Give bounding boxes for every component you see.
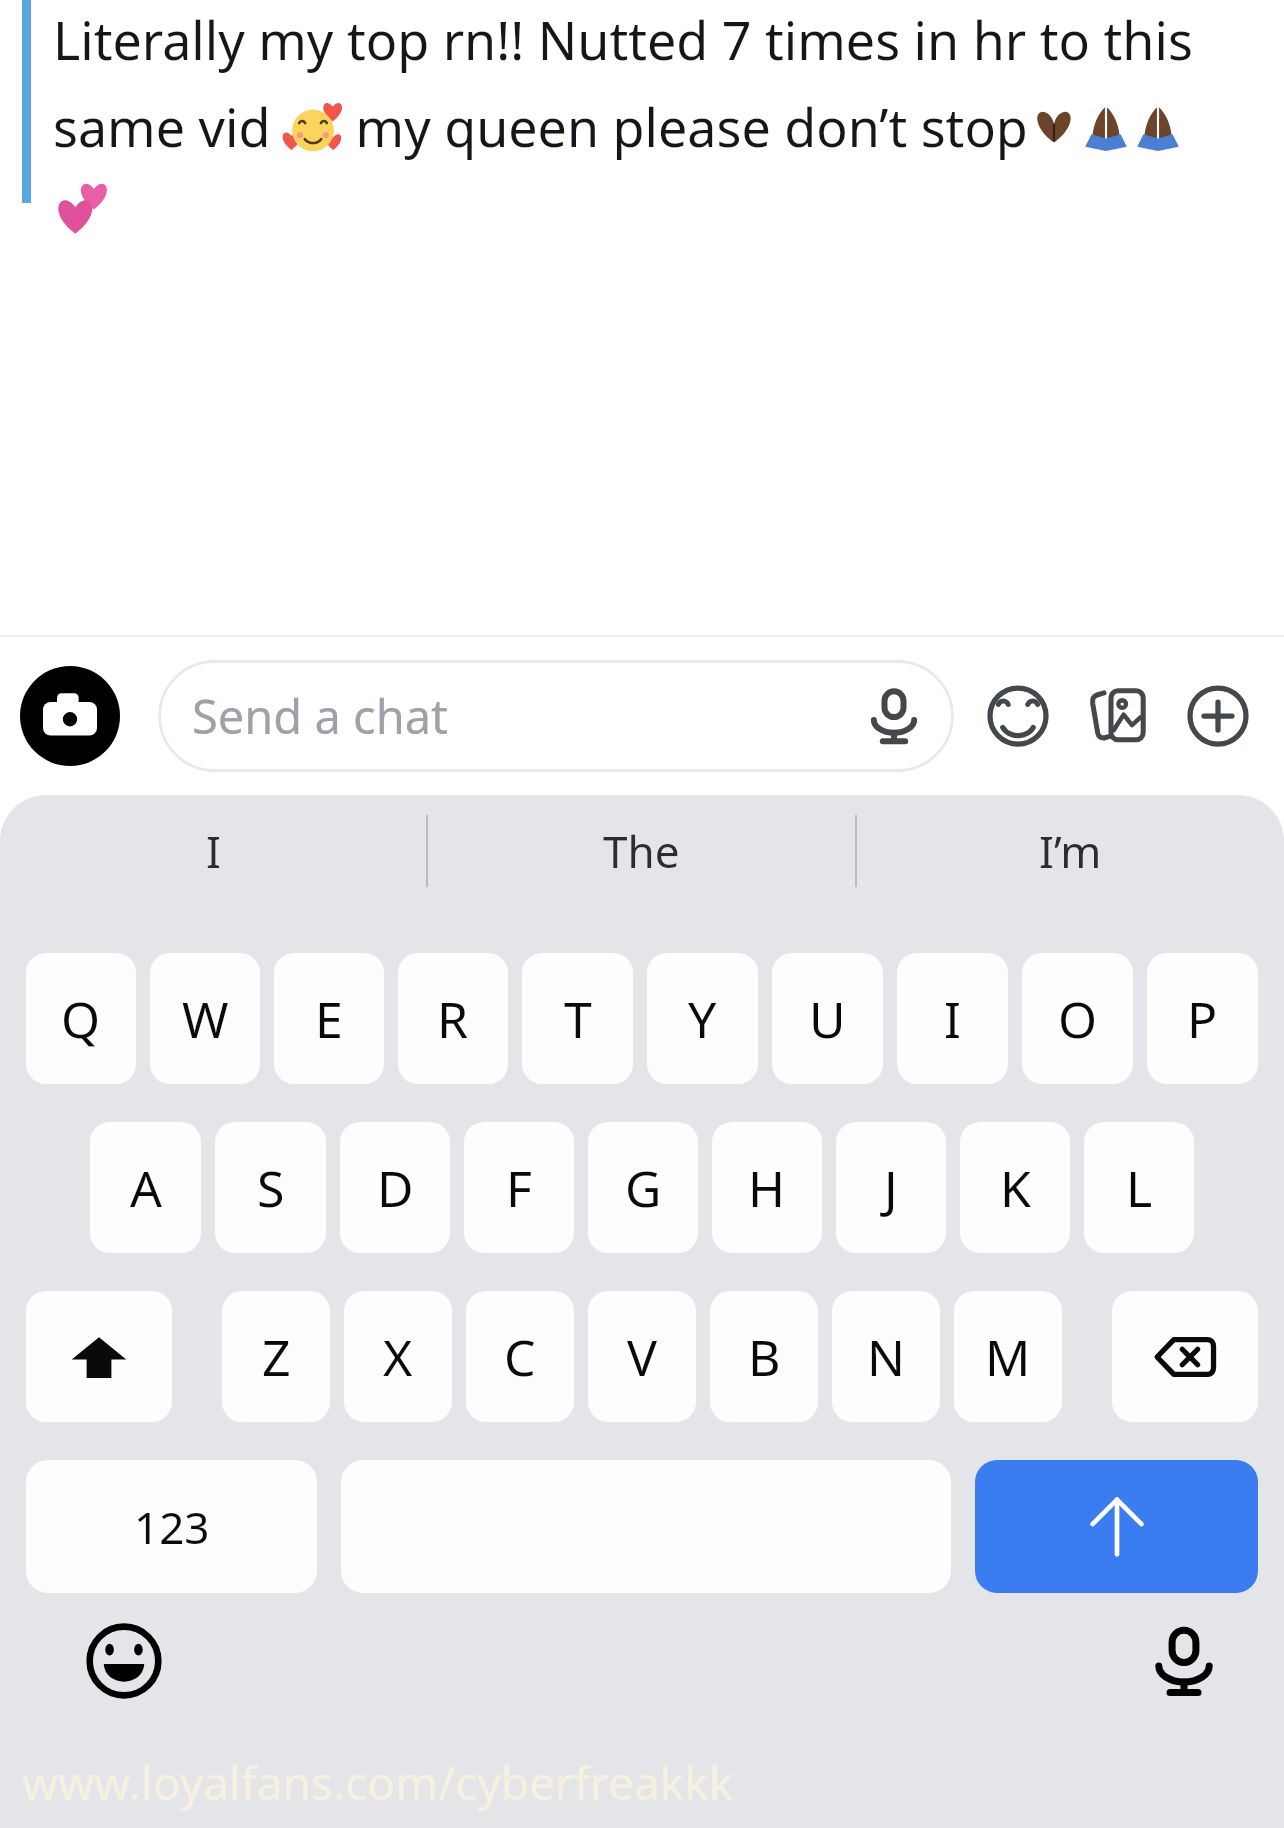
button[interactable]: More options — [1176, 674, 1260, 758]
staticText: Z — [262, 1323, 291, 1391]
button[interactable]: U — [772, 953, 883, 1084]
staticText: Send a chat — [192, 684, 852, 748]
staticText: E — [315, 985, 343, 1053]
button[interactable]: L — [1084, 1122, 1194, 1253]
button[interactable]: J — [836, 1122, 946, 1253]
staticText: www.loyalfans.com/cyberfreakkk — [22, 1751, 734, 1814]
button[interactable]: Z — [222, 1291, 330, 1422]
button[interactable]: S — [215, 1122, 326, 1253]
staticText: G — [625, 1154, 662, 1222]
button[interactable]: Emoji keyboard — [78, 1615, 170, 1707]
staticText: F — [506, 1154, 532, 1222]
staticText: M — [985, 1323, 1031, 1391]
staticText: I — [206, 821, 221, 881]
staticText: R — [437, 985, 469, 1053]
staticText: D — [377, 1154, 414, 1222]
button[interactable]: T — [522, 953, 633, 1084]
button[interactable]: F — [464, 1122, 574, 1253]
button[interactable]: I — [897, 953, 1008, 1084]
button[interactable]: H — [712, 1122, 822, 1253]
button[interactable]: D — [340, 1122, 450, 1253]
button[interactable]: V — [588, 1291, 696, 1422]
button[interactable]: Send a chat — [158, 660, 954, 772]
button[interactable]: X — [344, 1291, 452, 1422]
button[interactable]: Y — [647, 953, 758, 1084]
staticText: L — [1126, 1154, 1153, 1222]
button[interactable]: K — [960, 1122, 1070, 1253]
button[interactable]: G — [588, 1122, 698, 1253]
staticText: O — [1058, 985, 1098, 1053]
button[interactable]: Voice message — [852, 674, 936, 758]
button[interactable]: Send a sticker — [1076, 674, 1160, 758]
button[interactable]: Stickers and emoji — [976, 674, 1060, 758]
staticText: Literally my top rn!! Nutted 7 times in … — [53, 4, 1193, 75]
button[interactable]: I’m — [857, 795, 1284, 907]
staticText: my queen please don’t stop — [342, 91, 1028, 162]
staticText: W — [182, 985, 229, 1053]
button[interactable]: Backspace — [1112, 1291, 1258, 1422]
staticText: 123 — [134, 1497, 210, 1557]
button[interactable]: Voice input — [1138, 1615, 1230, 1707]
staticText: S — [257, 1154, 285, 1222]
button[interactable]: Q — [26, 953, 136, 1084]
staticText: same vid — [53, 91, 284, 162]
staticText: U — [809, 985, 846, 1053]
staticText: Q — [61, 985, 101, 1053]
staticText: Y — [688, 985, 717, 1053]
staticText: J — [884, 1154, 898, 1222]
staticText: N — [867, 1323, 905, 1391]
staticText: I’m — [1039, 821, 1102, 881]
button[interactable]: R — [398, 953, 508, 1084]
staticText: P — [1187, 985, 1218, 1053]
button[interactable]: C — [466, 1291, 574, 1422]
staticText: H — [748, 1154, 786, 1222]
button[interactable]: P — [1147, 953, 1258, 1084]
staticText: The — [603, 821, 680, 881]
button[interactable]: O — [1022, 953, 1133, 1084]
button[interactable]: Shift — [26, 1291, 172, 1422]
staticText: C — [504, 1323, 536, 1391]
button[interactable]: E — [274, 953, 384, 1084]
staticText: V — [627, 1323, 657, 1391]
button[interactable]: M — [954, 1291, 1062, 1422]
button[interactable]: B — [710, 1291, 818, 1422]
staticText: B — [748, 1323, 781, 1391]
staticText: K — [1000, 1154, 1031, 1222]
button[interactable]: Send — [975, 1460, 1258, 1593]
button[interactable]: A — [90, 1122, 201, 1253]
staticText: A — [130, 1154, 162, 1222]
button[interactable]: Open camera — [20, 666, 120, 766]
button[interactable]: 123 — [26, 1460, 317, 1593]
button[interactable]: The — [428, 795, 855, 907]
button[interactable]: N — [832, 1291, 940, 1422]
staticText: X — [383, 1323, 413, 1391]
button[interactable]: W — [150, 953, 260, 1084]
button[interactable]: I — [0, 795, 426, 907]
staticText: I — [944, 985, 961, 1053]
staticText: T — [564, 985, 592, 1053]
